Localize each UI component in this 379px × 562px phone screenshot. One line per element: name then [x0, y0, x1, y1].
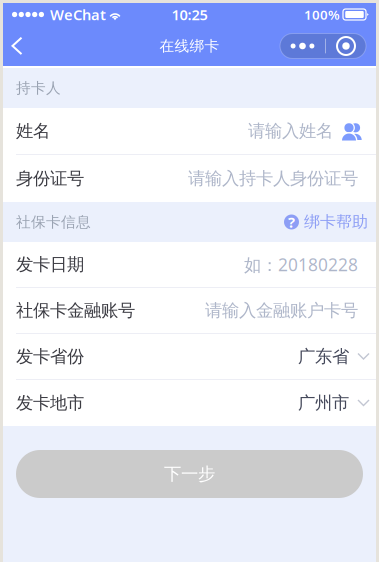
- staticText: 身份证号: [16, 168, 84, 189]
- staticText: 下一步: [164, 463, 215, 485]
- staticText: ?: [288, 212, 295, 232]
- staticText: 广州市: [298, 392, 349, 414]
- button[interactable]: ?: [284, 212, 368, 232]
- button[interactable]: 姓名: [3, 108, 376, 155]
- staticText: 请输入姓名: [248, 120, 333, 142]
- staticText: 社保卡金融账号: [16, 300, 135, 321]
- staticText: 请输入持卡人身份证号: [188, 168, 358, 189]
- staticText: 如：20180228: [244, 253, 358, 276]
- staticText: 在线绑卡: [159, 37, 219, 55]
- staticText: 发卡日期: [16, 254, 84, 275]
- button[interactable]: 发卡日期: [3, 242, 376, 288]
- button[interactable]: 发卡省份: [3, 334, 376, 380]
- staticText: 100%: [304, 6, 340, 23]
- staticText: 广东省: [298, 346, 349, 367]
- button[interactable]: More options: [280, 33, 376, 58]
- staticText: 持卡人: [16, 79, 61, 97]
- staticText: 姓名: [16, 120, 50, 142]
- button[interactable]: 发卡地市: [3, 380, 376, 426]
- button[interactable]: 身份证号: [3, 155, 376, 202]
- staticText: 绑卡帮助: [304, 212, 368, 232]
- button[interactable]: Back: [3, 26, 33, 66]
- staticText: WeChat: [50, 5, 106, 24]
- staticText: 请输入金融账户卡号: [205, 300, 358, 321]
- staticText: 发卡省份: [16, 346, 84, 367]
- button[interactable]: 社保卡金融账号: [3, 288, 376, 334]
- button[interactable]: 下一步: [16, 450, 363, 498]
- staticText: 发卡地市: [16, 392, 84, 414]
- staticText: 社保卡信息: [16, 213, 91, 231]
- staticText: 10:25: [171, 5, 207, 24]
